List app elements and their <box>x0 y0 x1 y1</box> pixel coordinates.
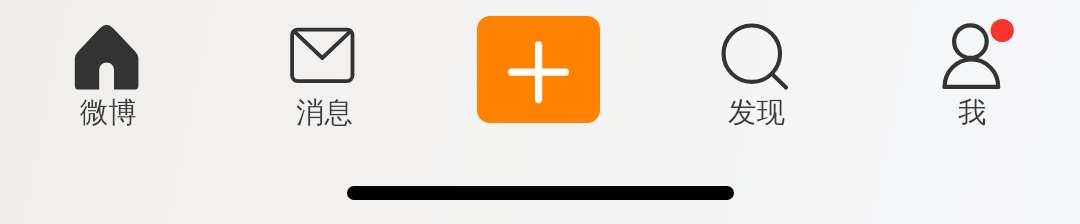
staticText: 消息 <box>296 95 353 131</box>
button[interactable]: 微博 <box>0 0 216 140</box>
button[interactable]: Compose post <box>477 16 600 123</box>
staticText: 发现 <box>728 95 785 131</box>
button[interactable]: 发现 <box>648 0 864 140</box>
staticText: 微博 <box>80 95 137 131</box>
staticText: 我 <box>958 95 987 131</box>
button[interactable]: 消息 <box>216 0 432 140</box>
button[interactable]: 我 <box>864 0 1080 140</box>
